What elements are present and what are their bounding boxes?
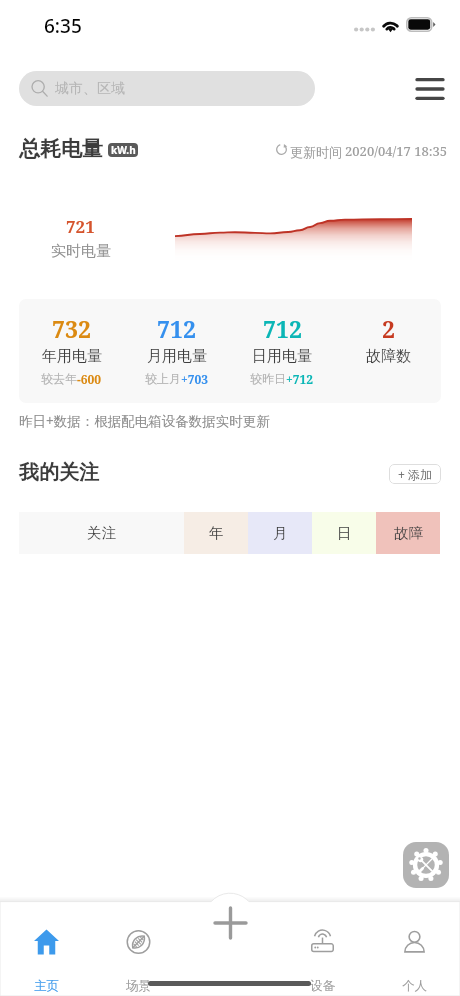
staticText: +712 [286, 371, 314, 387]
staticText: -600 [77, 371, 102, 387]
staticText: 较上月 [145, 371, 181, 386]
staticText: 732 [52, 313, 91, 344]
staticText: 721 [66, 215, 95, 238]
button[interactable]: 关注 [19, 512, 184, 554]
staticText: 月用电量 [147, 347, 207, 366]
button[interactable]: Menu [410, 72, 449, 106]
staticText: 6:35 [44, 13, 82, 39]
staticText: 日 [337, 524, 352, 542]
button[interactable]: 设备 [290, 915, 354, 996]
button[interactable]: 个人 [382, 915, 446, 996]
staticText: + 添加 [398, 466, 432, 482]
button[interactable]: + 添加 [389, 464, 441, 484]
staticText: 设备 [310, 978, 335, 994]
staticText: 实时电量 [51, 242, 111, 261]
staticText: 个人 [402, 978, 427, 994]
staticText: 昨日+数据：根据配电箱设备数据实时更新 [19, 412, 270, 430]
button[interactable]: 城市、区域 [19, 71, 315, 106]
staticText: 较昨日 [250, 371, 286, 386]
staticText: 更新时间 [290, 144, 342, 160]
button[interactable]: 日 [312, 512, 376, 554]
button[interactable]: 故障 [376, 512, 440, 554]
staticText: 年用电量 [42, 347, 102, 366]
button[interactable]: 主页 [14, 915, 78, 996]
staticText: 故障 [394, 524, 423, 542]
staticText: 较去年 [41, 371, 77, 386]
staticText: 712 [157, 313, 196, 344]
staticText: 712 [263, 313, 302, 344]
staticText: 年 [209, 524, 224, 542]
staticText: +703 [181, 371, 209, 387]
staticText: 2020/04/17 18:35 [345, 142, 448, 160]
button[interactable]: 场景 [106, 915, 170, 996]
button[interactable]: Settings [403, 842, 449, 888]
staticText: 故障数 [366, 347, 411, 366]
staticText: 2 [382, 313, 395, 344]
staticText: 主页 [34, 978, 59, 994]
button[interactable]: Add [202, 895, 258, 951]
staticText: 月 [273, 524, 288, 542]
staticText: 场景 [126, 978, 151, 994]
button[interactable]: 月 [248, 512, 312, 554]
staticText: 日用电量 [252, 347, 312, 366]
staticText: kW.h [111, 143, 136, 157]
button[interactable]: 年 [184, 512, 248, 554]
staticText: 关注 [87, 524, 116, 542]
staticText: 我的关注 [19, 460, 99, 485]
staticText: 总耗电量 [19, 136, 103, 162]
staticText: 城市、区域 [55, 80, 125, 98]
